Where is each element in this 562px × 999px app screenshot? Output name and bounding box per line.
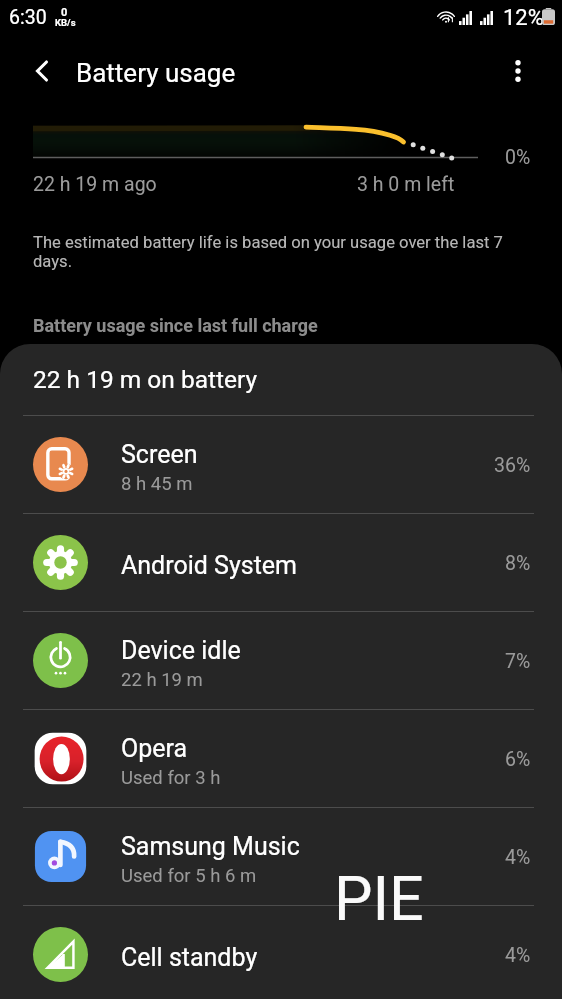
button[interactable]: Back bbox=[21, 50, 63, 92]
staticText: 6:30 bbox=[9, 6, 47, 29]
staticText: Android System bbox=[121, 551, 298, 580]
staticText: Screen bbox=[121, 440, 198, 469]
staticText: 0 bbox=[61, 6, 68, 19]
staticText: Used for 5 h 6 m bbox=[121, 865, 257, 887]
button[interactable]: More options bbox=[497, 50, 539, 92]
staticText: 4% bbox=[505, 846, 531, 869]
button[interactable]: Android System bbox=[0, 514, 562, 611]
staticText: 22 h 19 m bbox=[121, 669, 203, 691]
staticText: Used for 3 h bbox=[121, 767, 221, 789]
staticText: 22 h 19 m ago bbox=[33, 173, 157, 196]
button[interactable]: Samsung Music bbox=[0, 808, 562, 905]
staticText: 36% bbox=[494, 454, 531, 477]
staticText: 8% bbox=[505, 552, 531, 575]
staticText: Opera bbox=[121, 734, 188, 763]
staticText: 0% bbox=[505, 146, 531, 169]
button[interactable]: Device idle bbox=[0, 612, 562, 709]
staticText: The estimated battery life is based on y… bbox=[33, 233, 533, 271]
staticText: Battery usage bbox=[76, 58, 236, 88]
button[interactable]: Screen bbox=[0, 416, 562, 513]
staticText: Samsung Music bbox=[121, 832, 300, 861]
button[interactable]: Cell standby bbox=[0, 906, 562, 999]
staticText: Battery usage since last full charge bbox=[33, 315, 318, 336]
staticText: 6% bbox=[505, 748, 531, 771]
staticText: PIE bbox=[334, 863, 424, 934]
staticText: 4% bbox=[505, 944, 531, 967]
staticText: KB/s bbox=[55, 17, 76, 28]
staticText: 7% bbox=[505, 650, 531, 673]
other: Wi-Fi bbox=[436, 9, 456, 24]
staticText: Cell standby bbox=[121, 943, 258, 972]
staticText: 12% bbox=[503, 5, 544, 31]
button[interactable]: Opera bbox=[0, 710, 562, 807]
staticText: 22 h 19 m on battery bbox=[33, 365, 258, 394]
staticText: Device idle bbox=[121, 636, 241, 665]
staticText: 8 h 45 m bbox=[121, 473, 193, 495]
staticText: 3 h 0 m left bbox=[357, 173, 455, 196]
